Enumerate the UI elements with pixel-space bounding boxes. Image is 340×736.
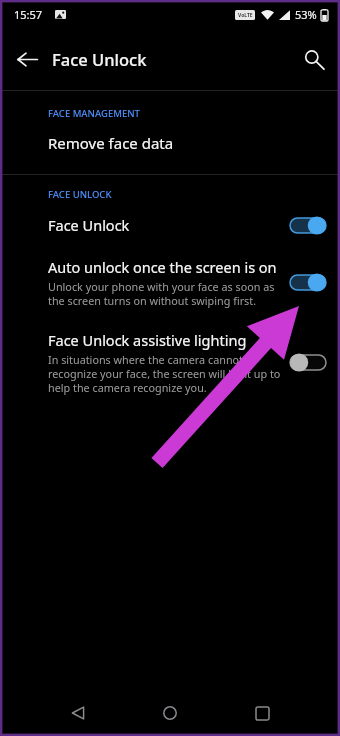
staticText: Face Unlock assistive lighting	[48, 330, 247, 350]
button[interactable]: Face Unlock	[0, 204, 340, 246]
staticText: Face Unlock	[52, 48, 147, 70]
staticText: Unlock your phone with your face as soon…	[48, 279, 275, 308]
other: On	[290, 216, 326, 235]
staticText: FACE UNLOCK	[48, 188, 112, 201]
button[interactable]: Face Unlock assistive lighting	[0, 319, 340, 406]
other: On	[290, 273, 326, 292]
staticText: VoLTE	[238, 12, 253, 19]
button[interactable]: Remove face data	[0, 123, 340, 163]
other: Off	[290, 353, 326, 372]
staticText: In situations where the camera cannot re…	[48, 352, 281, 395]
button[interactable]: Recent apps	[236, 693, 288, 733]
button[interactable]: Back	[52, 693, 104, 733]
button[interactable]: Back	[5, 37, 49, 81]
button[interactable]: Home	[144, 693, 196, 733]
staticText: 15:57	[14, 7, 43, 22]
staticText: Remove face data	[48, 133, 174, 153]
staticText: Auto unlock once the screen is on	[48, 257, 277, 277]
button[interactable]: Auto unlock once the screen is on	[0, 246, 340, 319]
staticText: Face Unlock	[48, 215, 130, 235]
staticText: FACE MANAGEMENT	[48, 107, 140, 120]
staticText: 53%	[295, 7, 317, 22]
button[interactable]: Search	[291, 37, 335, 81]
